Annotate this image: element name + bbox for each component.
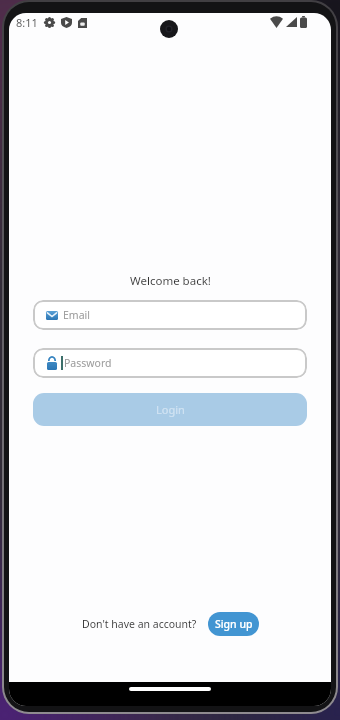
staticText: Password: [64, 356, 112, 370]
button[interactable]: Password: [33, 348, 307, 378]
staticText: 8:11: [16, 15, 38, 30]
staticText: Sign up: [215, 617, 253, 631]
button[interactable]: Email: [33, 300, 307, 330]
button[interactable]: Login: [33, 393, 307, 426]
staticText: Welcome back!: [130, 273, 211, 289]
staticText: Email: [63, 308, 90, 322]
staticText: Login: [156, 402, 185, 417]
staticText: Don't have an account?: [82, 617, 197, 631]
button[interactable]: Sign up: [208, 612, 259, 636]
